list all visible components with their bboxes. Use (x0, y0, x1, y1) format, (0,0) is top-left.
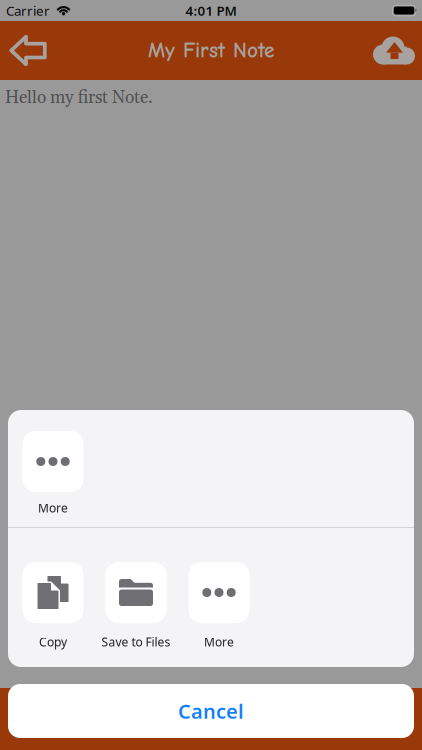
button[interactable]: Cancel (8, 684, 414, 738)
staticText: Cancel (178, 698, 244, 724)
button[interactable]: More (177, 562, 260, 650)
button[interactable]: Copy (11, 562, 94, 650)
staticText: My First Note (148, 38, 274, 63)
staticText: Save to Files (101, 634, 170, 650)
button[interactable]: Save to Files (94, 562, 177, 650)
button[interactable]: Back (0, 34, 47, 66)
button[interactable]: More (11, 431, 94, 516)
button[interactable]: Upload (373, 36, 422, 64)
staticText: Hello my first Note. (5, 87, 153, 109)
staticText: 4:01 PM (185, 2, 236, 19)
staticText: Carrier (6, 2, 50, 19)
staticText: More (204, 634, 234, 650)
staticText: Copy (39, 634, 67, 650)
staticText: More (38, 500, 68, 516)
